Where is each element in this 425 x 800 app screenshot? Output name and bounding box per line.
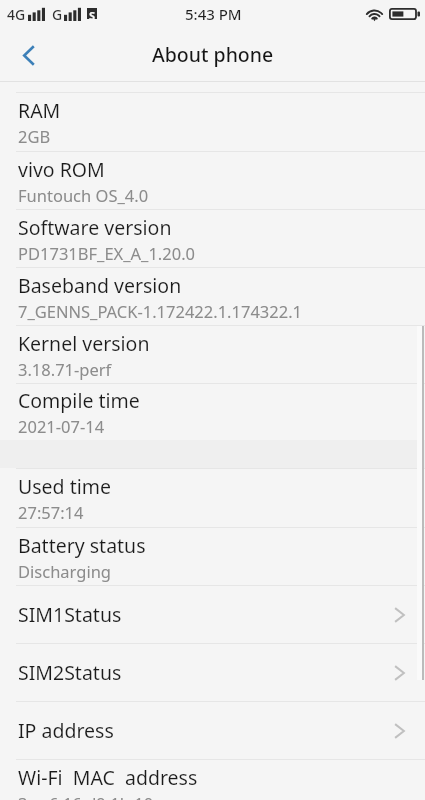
- staticText: 27:57:14: [18, 501, 84, 523]
- button[interactable]: Back: [5, 30, 53, 81]
- staticText: 7_GENNS_PACK-1.172422.1.174322.1: [18, 300, 302, 322]
- staticText: vivo ROM: [18, 156, 105, 183]
- button[interactable]: Battery status: [0, 528, 425, 585]
- staticText: Software version: [18, 214, 172, 241]
- staticText: SIM2Status: [18, 659, 122, 686]
- staticText: 3c:a6:16:d9:1b:10: [18, 792, 154, 800]
- button[interactable]: Kernel version: [0, 326, 425, 383]
- staticText: Battery status: [18, 532, 146, 559]
- staticText: 5:43 PM: [185, 4, 242, 24]
- button[interactable]: Baseband version: [0, 268, 425, 325]
- staticText: Used time: [18, 473, 111, 500]
- staticText: PD1731BF_EX_A_1.20.0: [18, 242, 196, 264]
- staticText: IP address: [18, 717, 114, 744]
- staticText: Funtouch OS_4.0: [18, 184, 149, 206]
- button[interactable]: Used time: [0, 469, 425, 527]
- staticText: About phone: [152, 41, 274, 68]
- staticText: Wi-Fi MAC address: [18, 764, 198, 791]
- staticText: 2GB: [18, 125, 51, 147]
- staticText: G: [52, 5, 63, 24]
- staticText: 4G: [7, 5, 26, 24]
- button[interactable]: Compile time: [0, 384, 425, 440]
- button[interactable]: SIM2Status: [0, 644, 425, 701]
- staticText: Baseband version: [18, 272, 182, 299]
- button[interactable]: SIM1Status: [0, 586, 425, 643]
- staticText: 2021-07-14: [18, 415, 105, 437]
- staticText: RAM: [18, 97, 61, 124]
- staticText: S: [89, 8, 96, 19]
- staticText: SIM1Status: [18, 601, 122, 628]
- staticText: Discharging: [18, 560, 111, 582]
- button[interactable]: Software version: [0, 210, 425, 267]
- button[interactable]: Wi-Fi MAC address: [0, 760, 425, 800]
- staticText: 3.18.71-perf: [18, 358, 112, 380]
- button[interactable]: RAM: [0, 93, 425, 151]
- button[interactable]: vivo ROM: [0, 152, 425, 209]
- staticText: Compile time: [18, 387, 140, 414]
- button[interactable]: IP address: [0, 702, 425, 759]
- staticText: Kernel version: [18, 330, 150, 357]
